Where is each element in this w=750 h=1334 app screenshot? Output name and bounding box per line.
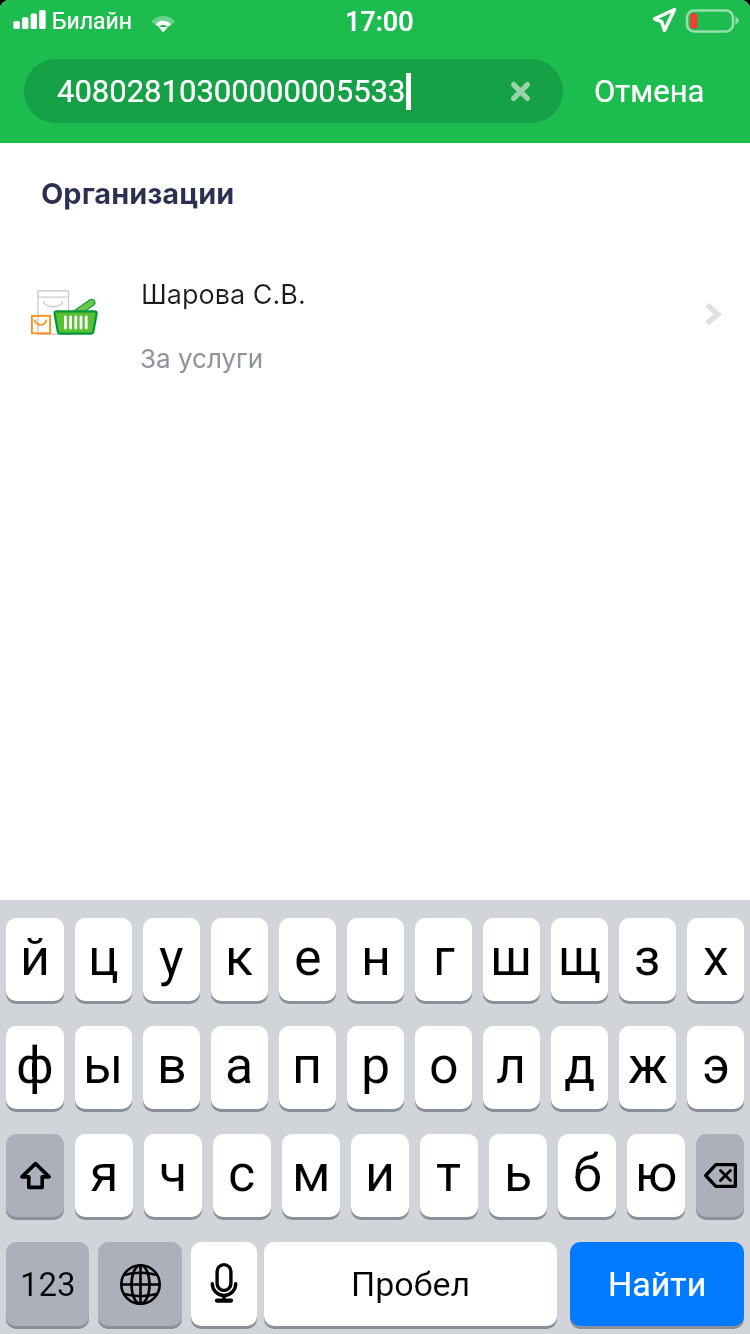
button[interactable]: Пробел	[264, 1242, 557, 1326]
button[interactable]: Найти	[570, 1242, 744, 1326]
button[interactable]: Dictation	[191, 1242, 257, 1326]
button[interactable]: с	[213, 1134, 271, 1217]
staticText: ю	[635, 1143, 678, 1204]
staticText: д	[564, 1035, 596, 1096]
staticText: й	[20, 927, 51, 988]
button[interactable]: Шарова С.В.	[0, 250, 750, 400]
staticText: п	[292, 1035, 323, 1096]
button[interactable]: Shift	[6, 1134, 64, 1217]
button[interactable]: д	[551, 1026, 608, 1109]
staticText: За услуги	[140, 343, 264, 374]
button[interactable]: Clear	[488, 59, 552, 123]
button[interactable]: б	[558, 1134, 616, 1217]
button[interactable]: я	[75, 1134, 133, 1217]
button[interactable]: з	[619, 918, 676, 1001]
button[interactable]: щ	[551, 918, 608, 1001]
button[interactable]: х	[687, 918, 744, 1001]
staticText: я	[90, 1143, 119, 1204]
staticText: м	[292, 1143, 331, 1204]
button[interactable]: ь	[489, 1134, 547, 1217]
staticText: у	[159, 927, 184, 988]
staticText: Шарова С.В.	[141, 278, 306, 311]
staticText: к	[225, 927, 254, 988]
staticText: 17:00	[345, 6, 414, 38]
button[interactable]: ф	[6, 1026, 64, 1109]
staticText: Найти	[608, 1264, 707, 1304]
staticText: н	[361, 927, 391, 988]
staticText: ж	[628, 1035, 668, 1096]
button[interactable]: п	[279, 1026, 336, 1109]
button[interactable]: ж	[619, 1026, 676, 1109]
button[interactable]: л	[483, 1026, 540, 1109]
staticText: ц	[88, 927, 119, 988]
staticText: в	[157, 1035, 187, 1096]
staticText: б	[573, 1143, 602, 1204]
button[interactable]: 123	[6, 1242, 89, 1326]
staticText: ь	[504, 1143, 533, 1204]
button[interactable]: р	[347, 1026, 404, 1109]
button[interactable]: э	[687, 1026, 744, 1109]
button[interactable]: о	[415, 1026, 472, 1109]
button[interactable]: и	[351, 1134, 409, 1217]
staticText: 123	[20, 1265, 76, 1304]
button[interactable]: е	[279, 918, 336, 1001]
staticText: х	[703, 927, 729, 988]
button[interactable]: Отмена	[590, 65, 709, 117]
button[interactable]: ю	[627, 1134, 685, 1217]
button[interactable]: ц	[75, 918, 132, 1001]
staticText: Организации	[41, 176, 235, 211]
staticText: ш	[490, 927, 533, 988]
staticText: щ	[558, 927, 602, 988]
button[interactable]: а	[211, 1026, 268, 1109]
staticText: т	[436, 1143, 462, 1204]
staticText: с	[228, 1143, 256, 1204]
staticText: л	[496, 1035, 527, 1096]
button[interactable]: ч	[144, 1134, 202, 1217]
button[interactable]: н	[347, 918, 404, 1001]
staticText: Отмена	[594, 73, 705, 109]
staticText: э	[702, 1035, 730, 1096]
button[interactable]: 40802810300000005533	[24, 59, 563, 123]
staticText: Пробел	[351, 1264, 471, 1304]
staticText: ы	[83, 1035, 124, 1096]
button[interactable]: Backspace	[696, 1134, 744, 1217]
staticText: о	[429, 1035, 459, 1096]
staticText: ф	[16, 1035, 54, 1096]
button[interactable]: м	[282, 1134, 340, 1217]
staticText: а	[225, 1035, 254, 1096]
button[interactable]: к	[211, 918, 268, 1001]
staticText: 40802810300000005533	[57, 73, 406, 109]
button[interactable]: й	[6, 918, 64, 1001]
staticText: з	[634, 927, 661, 988]
staticText: е	[294, 927, 322, 988]
button[interactable]: ы	[75, 1026, 132, 1109]
staticText: и	[365, 1143, 396, 1204]
staticText: ч	[159, 1143, 188, 1204]
button[interactable]: г	[415, 918, 472, 1001]
button[interactable]: у	[143, 918, 200, 1001]
button[interactable]: ш	[483, 918, 540, 1001]
button[interactable]: в	[143, 1026, 200, 1109]
staticText: г	[433, 927, 455, 988]
staticText: р	[361, 1035, 391, 1096]
button[interactable]: Change keyboard	[98, 1242, 182, 1326]
staticText: Билайн	[52, 8, 133, 35]
button[interactable]: т	[420, 1134, 478, 1217]
